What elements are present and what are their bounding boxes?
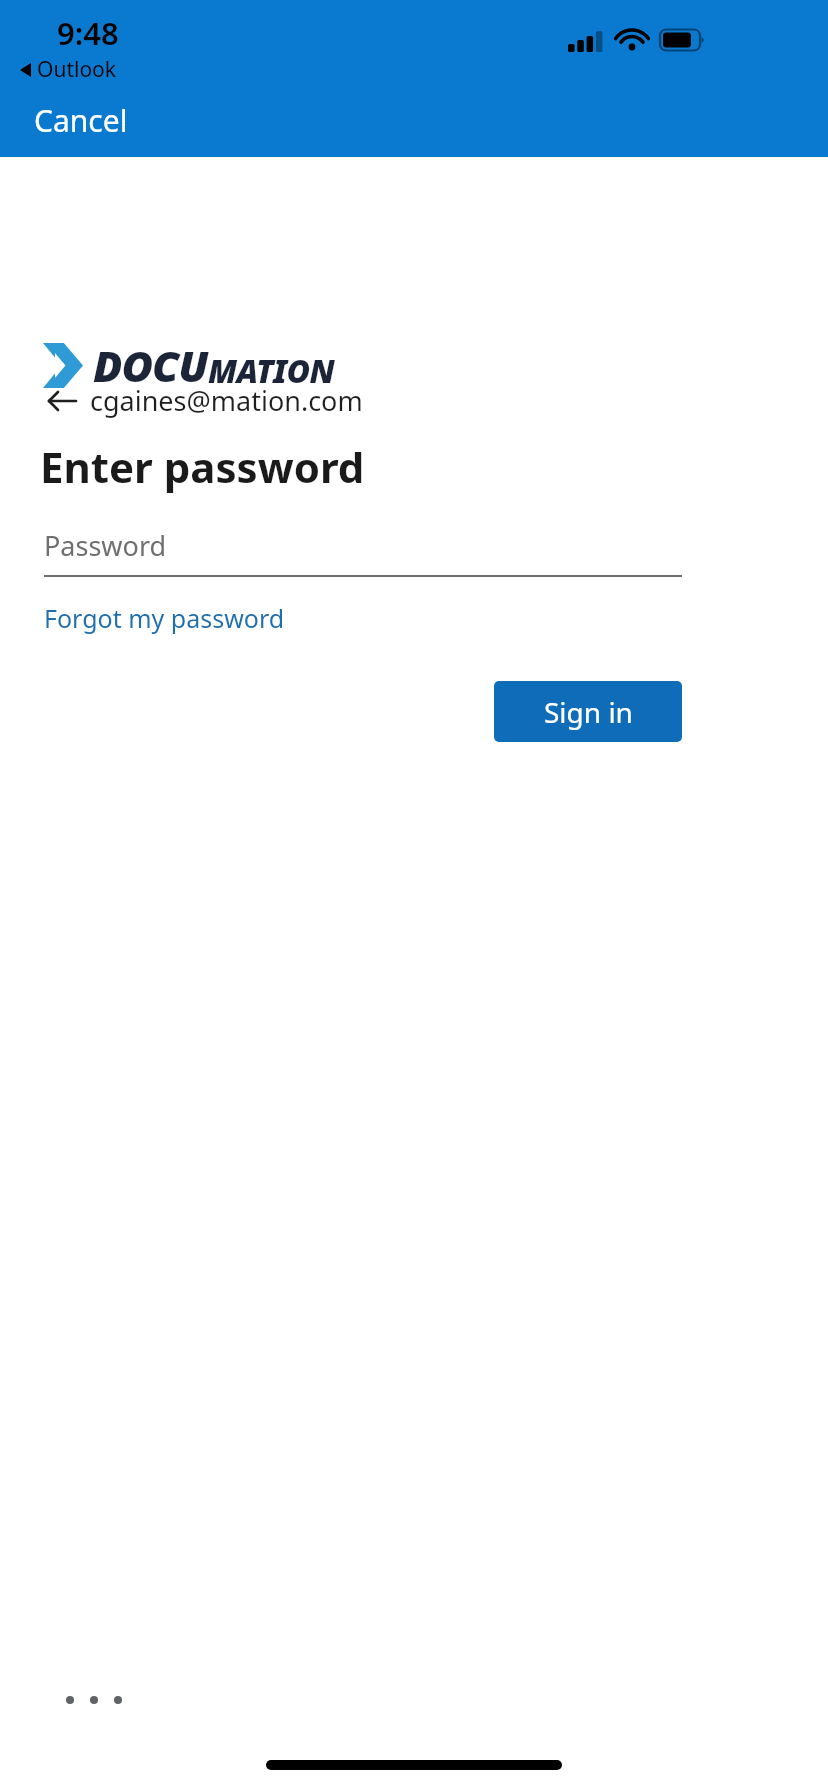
staticText: 9:48 bbox=[57, 12, 119, 54]
button[interactable]: More options bbox=[54, 1684, 134, 1716]
staticText: Cancel bbox=[34, 100, 128, 141]
button[interactable]: Sign in bbox=[494, 681, 682, 742]
button[interactable]: Forgot my password bbox=[32, 593, 297, 643]
staticText: cgaines@mation.com bbox=[90, 382, 363, 419]
button[interactable]: Outlook bbox=[16, 52, 121, 87]
button[interactable]: Back bbox=[38, 372, 375, 429]
staticText: MATION bbox=[208, 349, 335, 393]
staticText: Enter password bbox=[40, 438, 365, 495]
other: Back bbox=[48, 390, 76, 412]
staticText: Sign in bbox=[544, 693, 633, 731]
staticText: Outlook bbox=[37, 55, 117, 84]
button[interactable]: Password bbox=[44, 513, 682, 577]
button[interactable]: Cancel bbox=[20, 94, 142, 147]
staticText: Forgot my password bbox=[44, 601, 285, 635]
staticText: Password bbox=[44, 527, 167, 564]
staticText: DOCU bbox=[93, 336, 208, 395]
